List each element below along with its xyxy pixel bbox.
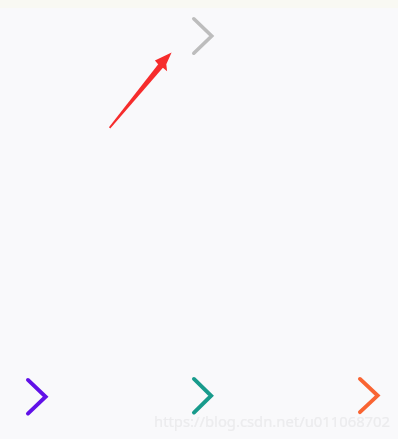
button[interactable]: Open teal item <box>191 376 214 416</box>
staticText: https://blog.csdn.net/u011068702 <box>154 411 390 431</box>
button[interactable]: Open orange item <box>357 376 381 415</box>
button[interactable]: Open item <box>191 16 215 56</box>
button[interactable]: Open purple item <box>25 377 49 417</box>
